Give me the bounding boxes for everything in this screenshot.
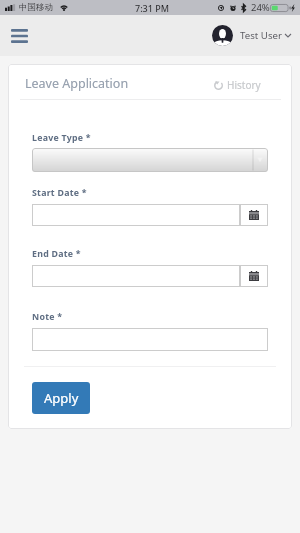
button[interactable]: Date input	[32, 204, 240, 226]
staticText: Apply	[44, 389, 79, 407]
staticText: Note *	[32, 311, 63, 323]
button[interactable]: Apply	[32, 382, 90, 414]
staticText: Leave Application	[25, 75, 129, 92]
button[interactable]: Open calendar	[240, 204, 268, 226]
button[interactable]: Open navigation menu	[5, 21, 34, 50]
staticText: 中国移动	[19, 2, 53, 13]
staticText: 24%	[251, 1, 270, 14]
button[interactable]: Open calendar	[240, 265, 268, 287]
staticText: Test User	[240, 29, 283, 42]
button[interactable]: History	[214, 78, 261, 92]
button[interactable]: Leave type selector	[32, 148, 268, 172]
staticText: History	[227, 78, 261, 92]
button[interactable]: Test User	[212, 25, 291, 46]
staticText: End Date *	[32, 248, 81, 260]
button[interactable]: Date input	[32, 265, 240, 287]
staticText: Leave Type *	[32, 132, 91, 144]
button[interactable]: Note input	[32, 328, 268, 351]
staticText: Start Date *	[32, 187, 87, 199]
staticText: 7:31 PM	[135, 2, 169, 14]
